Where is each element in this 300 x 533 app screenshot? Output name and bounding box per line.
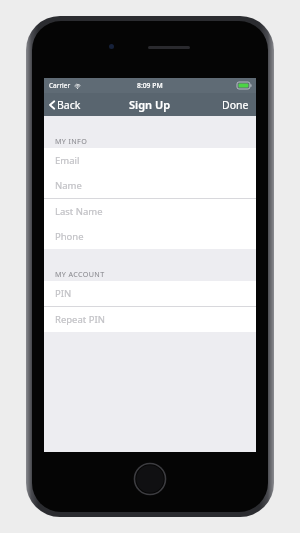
staticText: Name <box>55 179 82 192</box>
staticText: MY ACCOUNT <box>55 269 105 279</box>
staticText: MY INFO <box>55 136 88 146</box>
staticText: Carrier <box>49 81 71 90</box>
button[interactable]: Email <box>44 148 256 173</box>
button[interactable]: Phone <box>44 224 256 249</box>
staticText: PIN <box>55 287 72 300</box>
button[interactable]: Last Name <box>44 199 256 224</box>
button[interactable]: PIN <box>44 281 256 306</box>
staticText: Last Name <box>55 205 103 218</box>
button[interactable]: Back <box>44 93 89 116</box>
staticText: 8:09 PM <box>137 81 163 90</box>
staticText: Done <box>222 98 249 112</box>
staticText: Repeat PIN <box>55 313 105 326</box>
staticText: Back <box>57 98 81 112</box>
button[interactable]: Done <box>215 93 256 116</box>
button[interactable]: Repeat PIN <box>44 307 256 332</box>
staticText: Sign Up <box>129 97 171 112</box>
button[interactable]: Name <box>44 173 256 198</box>
staticText: Phone <box>55 230 84 243</box>
staticText: Email <box>55 154 80 167</box>
